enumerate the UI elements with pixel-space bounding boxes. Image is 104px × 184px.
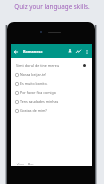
button[interactable]: Back [11, 47, 20, 56]
button[interactable]: Profile [66, 47, 74, 55]
staticText: CHECK [19, 163, 25, 165]
button[interactable]: Nossa beijar-te! [11, 70, 92, 79]
button[interactable]: SKIP [27, 162, 35, 166]
staticText: Romanesc [23, 49, 43, 54]
staticText: Tens saudades minhas [20, 99, 59, 104]
staticText: Por favor fica comigo [20, 90, 56, 95]
staticText: Nossa beijar-te! [20, 72, 47, 77]
button[interactable]: Es muito bonito. [11, 79, 92, 88]
button[interactable]: Play audio [83, 64, 86, 67]
staticText: SKIP [30, 163, 34, 165]
button[interactable]: Tens saudades minhas [11, 97, 92, 106]
staticText: Quiz your language skills. [0, 2, 104, 11]
button[interactable]: Gostas de mim? [11, 106, 92, 115]
button[interactable]: More options [83, 48, 90, 55]
staticText: Simt dorul de tine mereu [16, 63, 60, 68]
button[interactable]: Statistics [74, 47, 82, 55]
button[interactable]: Por favor fica comigo [11, 88, 92, 97]
button[interactable]: CHECK [16, 162, 26, 166]
staticText: Gostas de mim? [20, 108, 47, 113]
staticText: Es muito bonito. [20, 81, 48, 86]
